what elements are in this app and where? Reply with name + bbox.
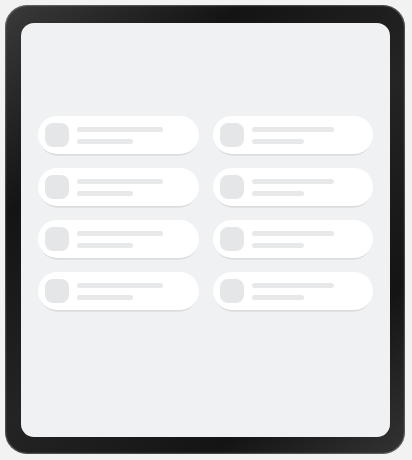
- button[interactable]: Loading item 1: [38, 116, 199, 154]
- button[interactable]: Loading item 2: [213, 116, 373, 154]
- button[interactable]: Loading item 5: [38, 220, 199, 258]
- button[interactable]: Loading item 3: [38, 168, 199, 206]
- button[interactable]: Loading item 7: [38, 272, 199, 310]
- button[interactable]: Loading item 4: [213, 168, 373, 206]
- button[interactable]: Loading item 6: [213, 220, 373, 258]
- button[interactable]: Loading item 8: [213, 272, 373, 310]
